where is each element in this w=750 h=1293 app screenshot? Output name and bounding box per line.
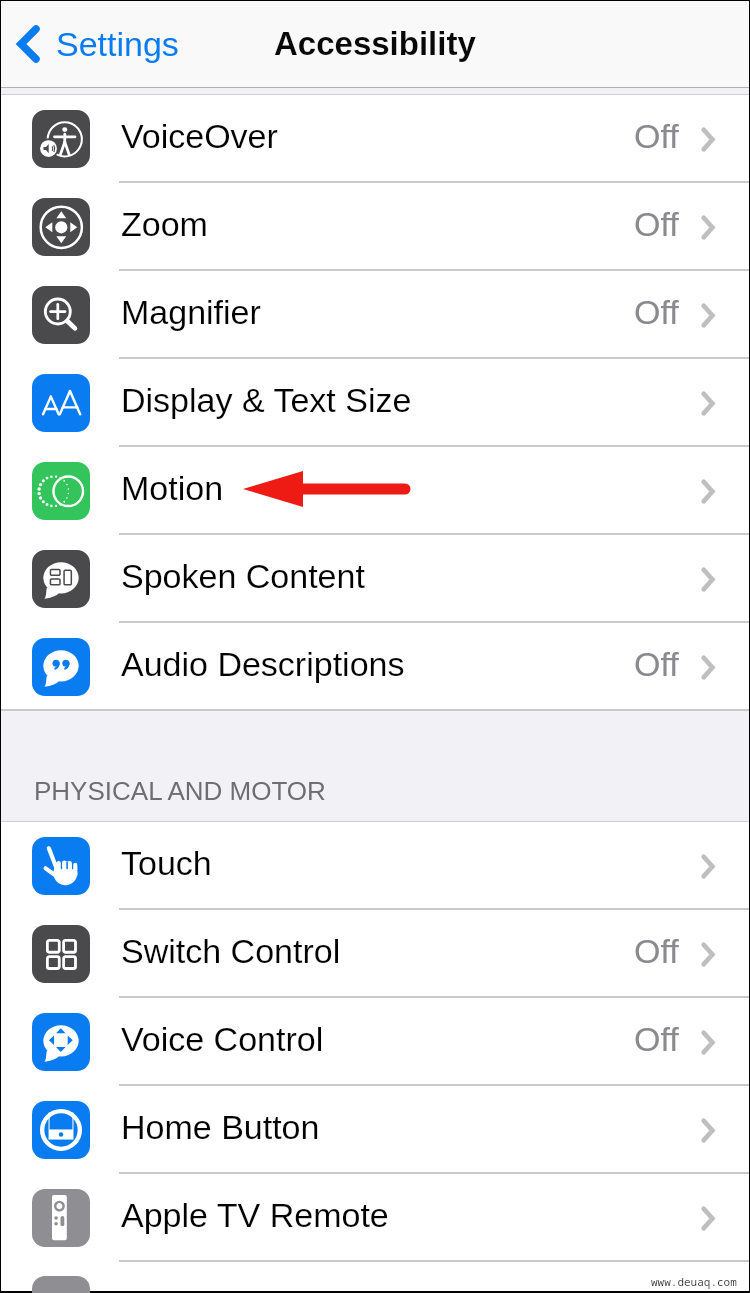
staticText: Off xyxy=(634,205,679,243)
button[interactable]: Switch Control xyxy=(1,910,749,998)
staticText: Voice Control xyxy=(121,1020,324,1058)
staticText: Home Button xyxy=(121,1108,320,1146)
button[interactable]: Voice Control xyxy=(1,998,749,1086)
staticText: Off xyxy=(634,117,679,155)
staticText: Zoom xyxy=(121,205,208,243)
staticText: Accessibility xyxy=(274,25,476,62)
staticText: Off xyxy=(634,645,679,683)
other: Back xyxy=(17,25,39,63)
button[interactable]: Motion xyxy=(1,447,749,535)
staticText: Off xyxy=(634,932,679,970)
staticText: Off xyxy=(634,293,679,331)
button[interactable]: Magnifier xyxy=(1,271,749,359)
button[interactable]: VoiceOver xyxy=(1,95,749,183)
staticText: Motion xyxy=(121,469,224,507)
staticText: Apple TV Remote xyxy=(121,1196,389,1234)
button[interactable]: Touch xyxy=(1,822,749,910)
button[interactable]: Spoken Content xyxy=(1,535,749,623)
button[interactable]: Display & Text Size xyxy=(1,359,749,447)
staticText: PHYSICAL AND MOTOR xyxy=(34,776,326,805)
staticText: Audio Descriptions xyxy=(121,645,405,683)
button[interactable]: Home Button xyxy=(1,1086,749,1174)
staticText: Switch Control xyxy=(121,932,341,970)
staticText: Off xyxy=(634,1020,679,1058)
button[interactable]: Back xyxy=(1,11,189,77)
staticText: VoiceOver xyxy=(121,117,278,155)
staticText: Display & Text Size xyxy=(121,381,412,419)
staticText: Settings xyxy=(56,25,179,63)
button[interactable]: Apple TV Remote xyxy=(1,1174,749,1262)
button[interactable]: Zoom xyxy=(1,183,749,271)
staticText: www.deuaq.com xyxy=(651,1274,737,1289)
staticText: Touch xyxy=(121,844,212,882)
button[interactable]: Audio Descriptions xyxy=(1,623,749,711)
staticText: Magnifier xyxy=(121,293,261,331)
staticText: Spoken Content xyxy=(121,557,365,595)
